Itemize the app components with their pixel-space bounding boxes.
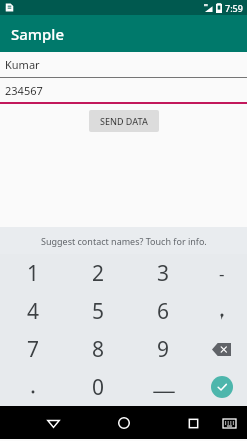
staticText: 7 [27, 335, 40, 364]
staticText: 8 [92, 335, 105, 364]
button[interactable]: Suggest contact names? Touch for info. [0, 227, 247, 254]
button[interactable]: Kumar [0, 52, 247, 77]
staticText: 9 [157, 335, 170, 364]
button[interactable]: 6 [131, 292, 196, 330]
staticText: 1 [27, 259, 40, 288]
staticText: Sample [11, 24, 64, 44]
button[interactable]: 7 [0, 330, 66, 368]
button[interactable]: 234567 [0, 78, 247, 102]
button[interactable]: 3 [131, 254, 196, 292]
button[interactable] [0, 368, 66, 406]
button[interactable]: Home [113, 412, 135, 434]
button[interactable] [196, 292, 247, 330]
staticText: 7:59 [225, 2, 243, 14]
staticText: 3 [157, 259, 170, 288]
button[interactable]: - [196, 254, 247, 292]
staticText: Kumar [5, 57, 40, 72]
button[interactable]: Enter [196, 368, 247, 406]
staticText: 6 [157, 297, 170, 326]
button[interactable]: 1 [0, 254, 66, 292]
button[interactable]: Switch keyboard [219, 413, 239, 433]
button[interactable]: 5 [66, 292, 131, 330]
staticText: 4 [27, 297, 40, 326]
button[interactable]: Recent apps [182, 412, 204, 434]
button[interactable]: 4 [0, 292, 66, 330]
button[interactable]: SEND DATA [89, 110, 159, 132]
button[interactable]: Back [42, 412, 64, 434]
staticText: 234567 [5, 83, 43, 98]
staticText: SEND DATA [100, 115, 148, 127]
button[interactable]: 8 [66, 330, 131, 368]
staticText: 5 [92, 297, 105, 326]
staticText: 2 [92, 259, 105, 288]
staticText: - [219, 262, 225, 285]
button[interactable]: 2 [66, 254, 131, 292]
button[interactable]: Backspace [196, 330, 247, 368]
button[interactable]: 9 [131, 330, 196, 368]
staticText: 0 [92, 373, 105, 402]
staticText: Suggest contact names? Touch for info. [41, 235, 207, 247]
button[interactable]: Space [131, 368, 196, 406]
button[interactable]: 0 [66, 368, 131, 406]
